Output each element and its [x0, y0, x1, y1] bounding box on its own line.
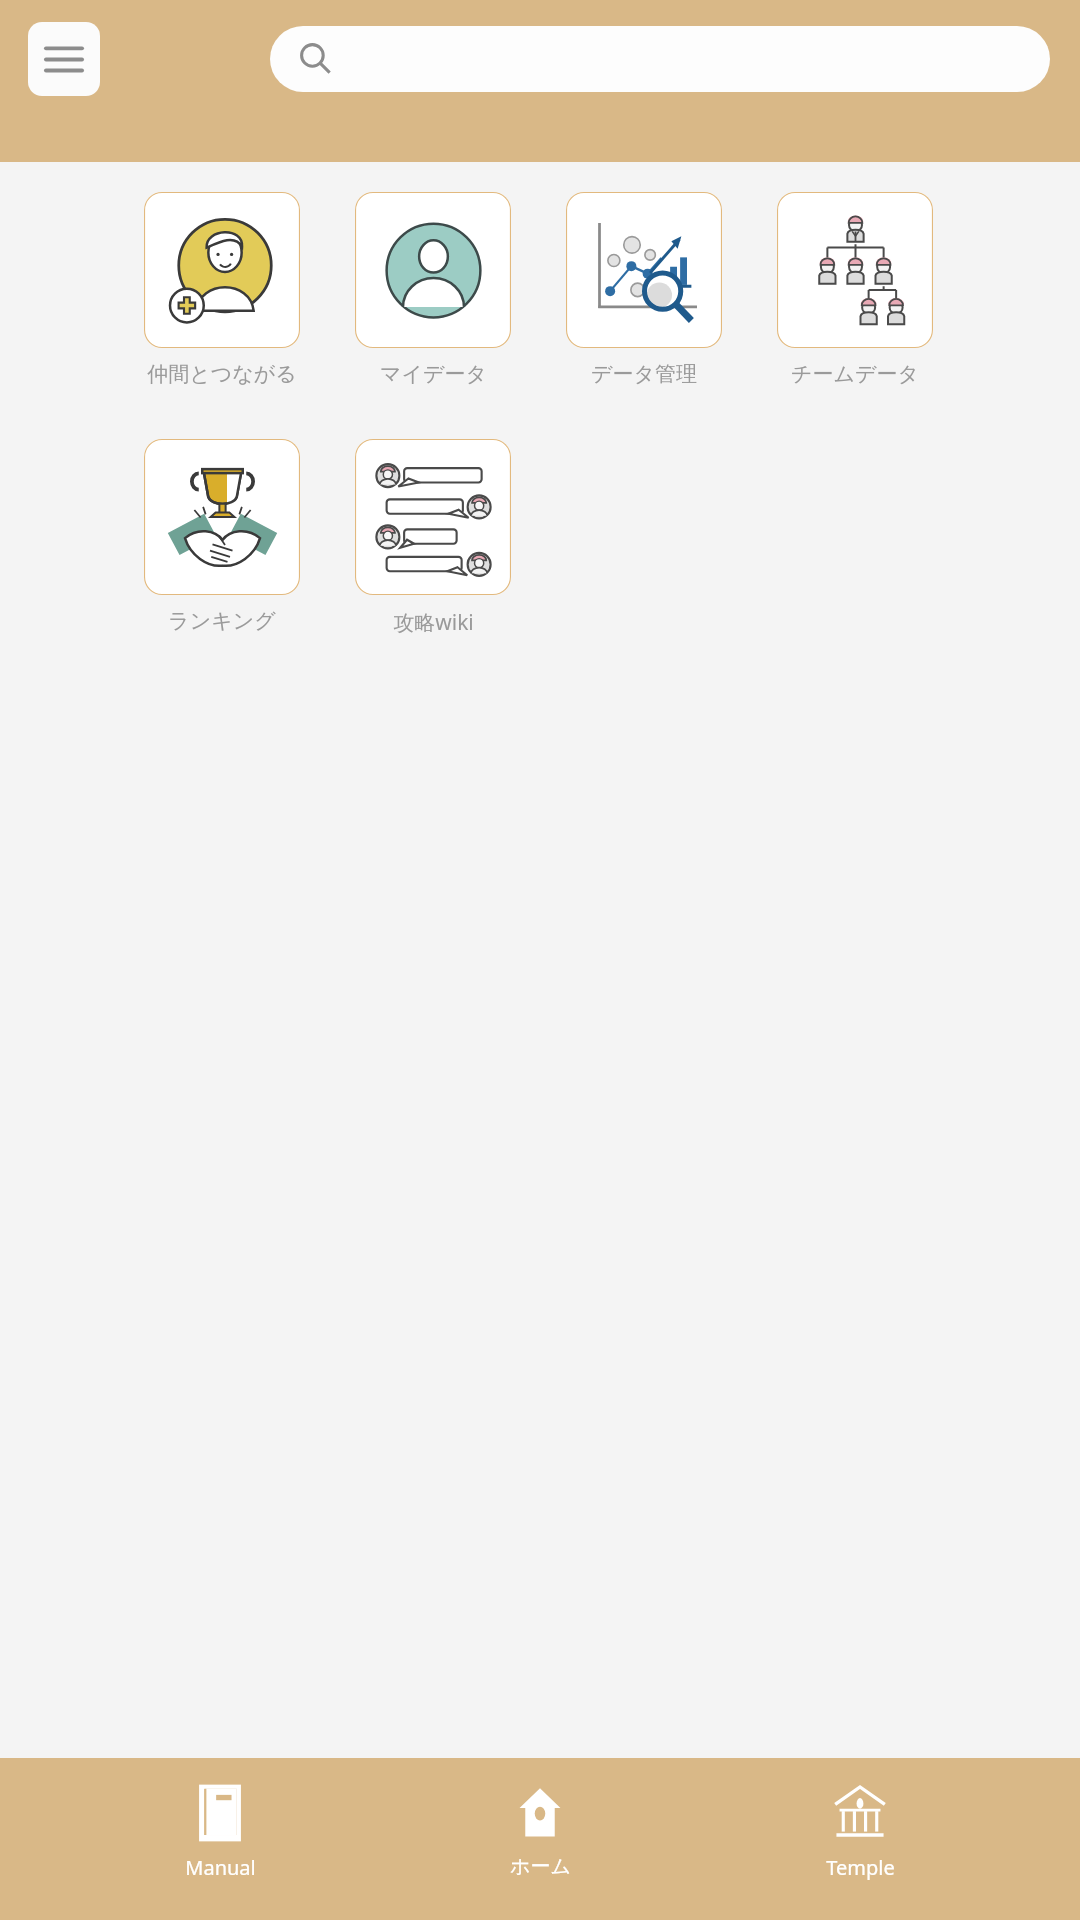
button[interactable]: 攻略wiki	[355, 439, 511, 637]
button[interactable]: チームデータ	[777, 192, 933, 387]
button[interactable]: データ管理	[566, 192, 722, 387]
button[interactable]: Temple	[760, 1776, 960, 1887]
button[interactable]: Home	[440, 1776, 640, 1885]
staticText: ランキング	[168, 608, 276, 634]
button[interactable]: ランキング	[144, 439, 300, 634]
staticText: 攻略wiki	[393, 608, 474, 637]
staticText: チームデータ	[791, 361, 919, 387]
staticText: 仲間とつながる	[147, 361, 297, 387]
staticText: ホーム	[510, 1854, 571, 1879]
staticText: Manual	[185, 1854, 256, 1881]
staticText: マイデータ	[380, 361, 487, 387]
button[interactable]: 仲間とつながる	[144, 192, 300, 387]
button[interactable]: Manual	[120, 1776, 320, 1887]
staticText: Temple	[826, 1854, 895, 1881]
button[interactable]: Menu	[28, 22, 100, 96]
button[interactable]	[270, 26, 1050, 92]
staticText: データ管理	[591, 361, 697, 387]
button[interactable]: マイデータ	[355, 192, 511, 387]
